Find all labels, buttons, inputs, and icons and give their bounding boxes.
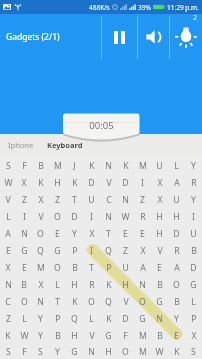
button[interactable]: K <box>66 174 83 191</box>
button[interactable]: I <box>83 208 100 225</box>
button[interactable]: T <box>66 191 83 208</box>
button[interactable]: Z <box>49 191 66 208</box>
button[interactable]: K <box>168 344 185 359</box>
button[interactable]: D <box>66 208 83 225</box>
button[interactable]: U <box>117 259 134 276</box>
button[interactable]: O <box>32 225 49 242</box>
button[interactable]: H <box>151 208 168 225</box>
button[interactable]: Q <box>66 310 83 327</box>
button[interactable]: X <box>16 174 32 191</box>
button[interactable]: V <box>32 208 49 225</box>
button[interactable]: L <box>185 293 202 310</box>
button[interactable]: Z <box>117 242 134 259</box>
button[interactable]: S <box>32 344 49 359</box>
button[interactable]: D <box>83 174 100 191</box>
button[interactable]: N <box>83 344 100 359</box>
button[interactable]: H <box>100 344 117 359</box>
button[interactable]: Z <box>134 191 151 208</box>
button[interactable]: H <box>168 208 185 225</box>
button[interactable]: W <box>117 208 134 225</box>
button[interactable]: V <box>83 327 100 344</box>
button[interactable]: E <box>117 225 134 242</box>
button[interactable]: H <box>151 225 168 242</box>
button[interactable]: E <box>16 259 32 276</box>
button[interactable]: M <box>134 157 151 174</box>
button[interactable]: E <box>151 259 168 276</box>
button[interactable]: B <box>49 327 66 344</box>
button[interactable]: D <box>117 310 134 327</box>
button[interactable]: M <box>49 157 66 174</box>
button[interactable]: B <box>151 327 168 344</box>
button[interactable]: Pause <box>102 14 137 60</box>
button[interactable]: E <box>49 225 66 242</box>
button[interactable]: H <box>66 276 83 293</box>
button[interactable]: V <box>100 174 117 191</box>
button[interactable]: H <box>49 174 66 191</box>
button[interactable]: B <box>16 276 32 293</box>
button[interactable]: I <box>134 174 151 191</box>
button[interactable]: P <box>185 310 202 327</box>
button[interactable]: E <box>134 225 151 242</box>
button[interactable]: Y <box>168 310 185 327</box>
button[interactable]: Q <box>100 242 117 259</box>
button[interactable]: Hint <box>170 14 202 60</box>
button[interactable]: G <box>151 293 168 310</box>
button[interactable]: S <box>185 344 202 359</box>
button[interactable]: O <box>49 259 66 276</box>
button[interactable]: P <box>49 310 66 327</box>
button[interactable]: Z <box>16 191 32 208</box>
button[interactable]: Y <box>32 310 49 327</box>
button[interactable]: G <box>66 344 83 359</box>
button[interactable]: L <box>49 276 66 293</box>
button[interactable]: V <box>0 191 16 208</box>
button[interactable]: Y <box>66 225 83 242</box>
button[interactable]: C <box>0 293 16 310</box>
button[interactable]: A <box>134 259 151 276</box>
button[interactable]: K <box>32 174 49 191</box>
button[interactable]: V <box>117 293 134 310</box>
button[interactable]: N <box>16 225 32 242</box>
button[interactable]: Y <box>185 157 202 174</box>
button[interactable]: N <box>134 276 151 293</box>
button[interactable]: S <box>0 157 16 174</box>
button[interactable]: O <box>83 293 100 310</box>
button[interactable]: H <box>117 276 134 293</box>
button[interactable]: G <box>185 276 202 293</box>
button[interactable]: U <box>151 157 168 174</box>
button[interactable]: I <box>185 208 202 225</box>
button[interactable]: Keyboard <box>47 140 83 150</box>
button[interactable]: G <box>134 310 151 327</box>
button[interactable]: T <box>49 293 66 310</box>
button[interactable]: G <box>16 242 32 259</box>
button[interactable]: A <box>0 225 16 242</box>
button[interactable]: N <box>100 208 117 225</box>
button[interactable]: U <box>168 191 185 208</box>
button[interactable]: O <box>134 293 151 310</box>
button[interactable]: B <box>151 276 168 293</box>
button[interactable]: U <box>185 225 202 242</box>
button[interactable]: X <box>134 242 151 259</box>
button[interactable]: X <box>32 276 49 293</box>
button[interactable]: L <box>16 310 32 327</box>
button[interactable]: O <box>168 276 185 293</box>
button[interactable]: G <box>49 242 66 259</box>
button[interactable]: O <box>16 293 32 310</box>
button[interactable]: Iphone <box>8 140 34 150</box>
button[interactable]: N <box>100 157 117 174</box>
button[interactable]: O <box>49 208 66 225</box>
button[interactable]: C <box>100 191 117 208</box>
button[interactable]: B <box>32 157 49 174</box>
button[interactable]: A <box>168 259 185 276</box>
button[interactable]: E <box>168 327 185 344</box>
button[interactable]: X <box>185 327 202 344</box>
button[interactable]: D <box>117 174 134 191</box>
button[interactable]: O <box>117 344 134 359</box>
button[interactable]: K <box>100 276 117 293</box>
button[interactable]: F <box>16 344 32 359</box>
button[interactable]: T <box>100 225 117 242</box>
button[interactable]: P <box>100 259 117 276</box>
button[interactable]: I <box>16 208 32 225</box>
button[interactable]: B <box>66 259 83 276</box>
button[interactable]: Y <box>185 191 202 208</box>
button[interactable]: M <box>134 327 151 344</box>
